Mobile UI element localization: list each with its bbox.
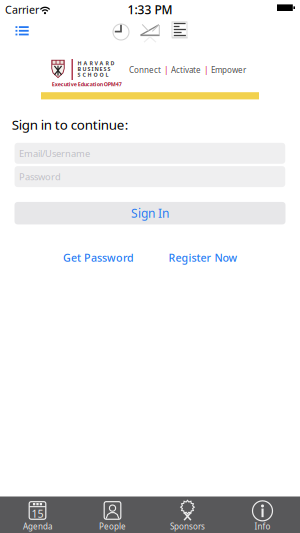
- button[interactable]: Get Password: [63, 250, 134, 265]
- staticText: Sign in to continue:: [12, 116, 129, 133]
- staticText: B U S I N E S S: [77, 65, 110, 72]
- button[interactable]: Info: [225, 496, 300, 533]
- staticText: Sponsors: [170, 521, 205, 532]
- staticText: Empower: [211, 65, 246, 75]
- button[interactable]: Sign In: [14, 202, 285, 224]
- staticText: Carrier: [5, 2, 39, 17]
- staticText: |: [204, 65, 208, 75]
- staticText: People: [99, 521, 126, 532]
- staticText: Get Password: [63, 250, 134, 265]
- staticText: H A R V A R D: [77, 60, 114, 67]
- staticText: Agenda: [23, 521, 52, 532]
- button[interactable]: Sponsors: [150, 496, 225, 533]
- staticText: 1:33 PM: [127, 1, 172, 17]
- staticText: Info: [254, 521, 270, 532]
- button[interactable]: Email/Username: [15, 143, 285, 164]
- staticText: Password: [19, 170, 61, 183]
- button[interactable]: Register Now: [168, 250, 237, 265]
- button[interactable]: [171, 21, 188, 40]
- staticText: Connect: [129, 65, 161, 75]
- button[interactable]: [15, 25, 29, 36]
- staticText: Executive Education OPM47: [52, 81, 122, 88]
- button[interactable]: Password: [15, 166, 285, 187]
- staticText: Register Now: [168, 250, 237, 265]
- button[interactable]: [140, 24, 160, 43]
- staticText: Email/Username: [19, 147, 90, 159]
- staticText: |: [164, 65, 168, 75]
- staticText: Sign In: [131, 205, 169, 221]
- button[interactable]: [112, 23, 130, 41]
- staticText: Activate: [171, 65, 201, 75]
- button[interactable]: 15: [0, 496, 75, 533]
- staticText: 15: [31, 507, 43, 521]
- button[interactable]: People: [75, 496, 150, 533]
- staticText: S C H O O L: [77, 71, 108, 78]
